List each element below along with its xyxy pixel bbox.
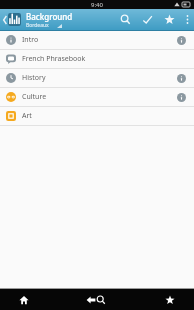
- button[interactable]: Info about History: [172, 69, 190, 87]
- staticText: French Phrasebook: [22, 54, 172, 64]
- button[interactable]: Intro: [0, 31, 194, 49]
- button[interactable]: Info about Culture: [172, 88, 190, 106]
- button[interactable]: Search: [96, 289, 145, 310]
- staticText: Intro: [22, 35, 172, 45]
- staticText: Background: [26, 11, 73, 22]
- button[interactable]: Navigate up: [2, 9, 22, 30]
- staticText: 9:40: [91, 1, 103, 9]
- button[interactable]: More options: [180, 9, 194, 30]
- button[interactable]: Art: [0, 107, 194, 125]
- button[interactable]: Edit: [136, 9, 158, 30]
- button[interactable]: Favorites: [145, 289, 194, 310]
- button[interactable]: French Phrasebook: [0, 50, 194, 68]
- staticText: History: [22, 73, 172, 83]
- button[interactable]: Info about Intro: [172, 31, 190, 49]
- button[interactable]: Search: [114, 9, 136, 30]
- button[interactable]: Home: [0, 289, 48, 310]
- button[interactable]: History: [0, 69, 194, 87]
- button[interactable]: Culture: [0, 88, 194, 106]
- staticText: Art: [22, 111, 172, 121]
- staticText: Bordeaux: [26, 22, 49, 29]
- button[interactable]: Back: [48, 289, 96, 310]
- button[interactable]: Bookmark: [158, 9, 180, 30]
- staticText: Culture: [22, 92, 172, 102]
